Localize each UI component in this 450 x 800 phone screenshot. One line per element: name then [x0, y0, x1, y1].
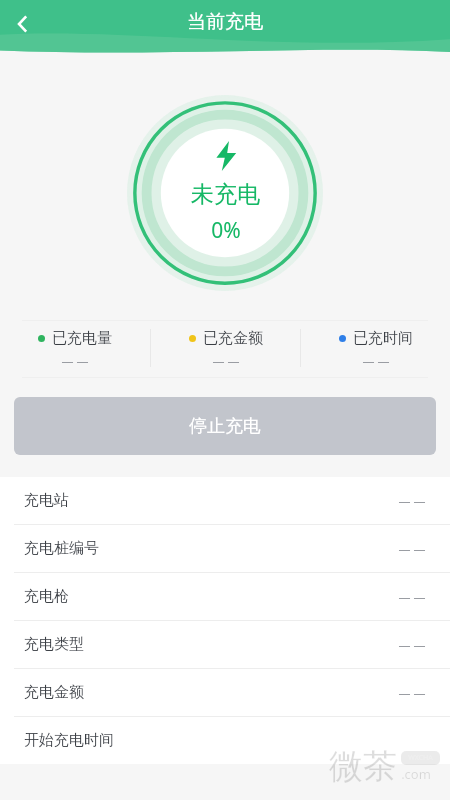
- button[interactable]: 开始充电时间: [0, 717, 450, 764]
- staticText: — —: [212, 353, 240, 369]
- staticText: 当前充电: [187, 10, 263, 34]
- staticText: — —: [398, 637, 426, 653]
- staticText: 未充电: [191, 180, 260, 209]
- button[interactable]: 充电站: [0, 477, 450, 524]
- staticText: — —: [398, 541, 426, 557]
- button[interactable]: Back: [0, 1, 46, 47]
- staticText: — —: [398, 493, 426, 509]
- staticText: 微茶: [329, 745, 397, 788]
- button[interactable]: 充电桩编号: [0, 525, 450, 572]
- staticText: — —: [61, 353, 89, 369]
- button[interactable]: 已充时间: [301, 329, 450, 369]
- staticText: 充电类型: [24, 635, 84, 654]
- button[interactable]: 充电类型: [0, 621, 450, 668]
- staticText: — —: [362, 353, 390, 369]
- button[interactable]: 已充金额: [151, 329, 300, 369]
- button[interactable]: 已充电量: [0, 329, 150, 369]
- staticText: 0%: [211, 216, 241, 245]
- staticText: 开始充电时间: [24, 731, 114, 750]
- staticText: 充电站: [24, 491, 69, 510]
- staticText: 充电桩编号: [24, 539, 99, 558]
- button[interactable]: 充电金额: [0, 669, 450, 716]
- staticText: 充电金额: [24, 683, 84, 702]
- staticText: 已充时间: [353, 329, 413, 348]
- staticText: 已充金额: [203, 329, 263, 348]
- button[interactable]: 停止充电: [14, 397, 436, 455]
- staticText: — —: [398, 685, 426, 701]
- staticText: 充电枪: [24, 587, 69, 606]
- staticText: 停止充电: [189, 415, 261, 438]
- button[interactable]: 充电枪: [0, 573, 450, 620]
- staticText: 已充电量: [52, 329, 112, 348]
- staticText: .com: [401, 765, 431, 783]
- staticText: — —: [398, 589, 426, 605]
